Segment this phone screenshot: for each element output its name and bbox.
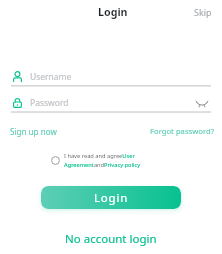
button[interactable]: Sign up now xyxy=(5,123,62,140)
staticText: Forgot password? xyxy=(150,126,215,136)
button[interactable]: No account login xyxy=(59,228,163,250)
staticText: I have read and agreeUser AgreementandPr… xyxy=(64,152,142,168)
staticText: Skip xyxy=(194,6,212,18)
button[interactable]: Login xyxy=(41,186,181,209)
staticText: Login xyxy=(94,190,129,206)
button[interactable]: Show password xyxy=(194,96,210,112)
staticText: Sign up now xyxy=(10,126,57,137)
staticText: Login xyxy=(98,5,128,20)
button[interactable]: Forgot password? xyxy=(145,123,220,139)
button[interactable]: Login xyxy=(92,1,134,24)
button[interactable]: Skip xyxy=(188,2,218,22)
button[interactable]: I have read and agreeUser AgreementandPr… xyxy=(51,152,142,168)
staticText: Password xyxy=(30,97,69,109)
staticText: Username xyxy=(30,71,72,83)
staticText: No account login xyxy=(65,231,157,247)
